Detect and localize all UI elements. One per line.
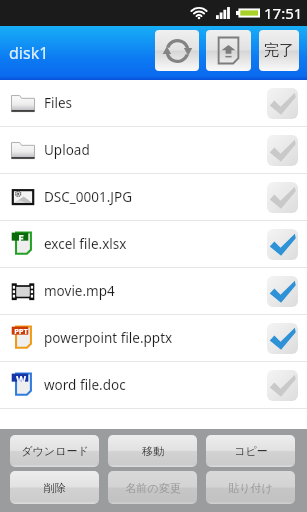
button[interactable]: 移動 [108, 435, 197, 467]
staticText: 貼り付け [228, 481, 273, 495]
button[interactable]: 完了 [259, 30, 299, 71]
staticText: ダウンロード [21, 444, 89, 458]
button[interactable]: Select [267, 229, 298, 260]
button[interactable]: movie.mp4 [0, 268, 307, 314]
button[interactable]: Files [0, 80, 307, 126]
button[interactable]: Select [267, 182, 298, 213]
staticText: W [16, 373, 26, 382]
staticText: 名前の変更 [125, 481, 181, 495]
button[interactable]: 削除 [10, 471, 99, 504]
button[interactable]: Select [267, 370, 298, 401]
button[interactable]: 貼り付け [206, 471, 295, 504]
button[interactable]: E [0, 221, 307, 267]
button[interactable]: 名前の変更 [108, 471, 197, 504]
button[interactable]: Upload [0, 127, 307, 173]
staticText: excel file.xlsx [44, 235, 257, 253]
button[interactable]: W [0, 362, 307, 408]
staticText: 完了 [264, 41, 294, 60]
staticText: word file.doc [44, 376, 257, 394]
staticText: PPT [14, 326, 28, 335]
button[interactable]: コピー [206, 435, 295, 467]
staticText: movie.mp4 [44, 282, 257, 300]
staticText: 移動 [142, 444, 164, 458]
staticText: 削除 [44, 481, 66, 495]
button[interactable]: PPT [0, 315, 307, 361]
staticText: E [18, 232, 24, 241]
staticText: disk1 [9, 42, 49, 64]
button[interactable]: DSC_0001.JPG [0, 174, 307, 220]
button[interactable]: Select [267, 88, 298, 119]
staticText: Files [44, 94, 257, 112]
button[interactable]: Select [267, 276, 298, 307]
staticText: Upload [44, 141, 257, 159]
staticText: 17:51 [264, 3, 303, 23]
button[interactable]: Select [267, 135, 298, 166]
button[interactable]: ダウンロード [10, 435, 99, 467]
button[interactable]: Select [267, 323, 298, 354]
staticText: powerpoint file.pptx [44, 329, 257, 347]
button[interactable]: Refresh [155, 30, 199, 71]
button[interactable]: Upload [206, 30, 251, 71]
staticText: DSC_0001.JPG [44, 188, 257, 206]
staticText: コピー [234, 444, 268, 458]
